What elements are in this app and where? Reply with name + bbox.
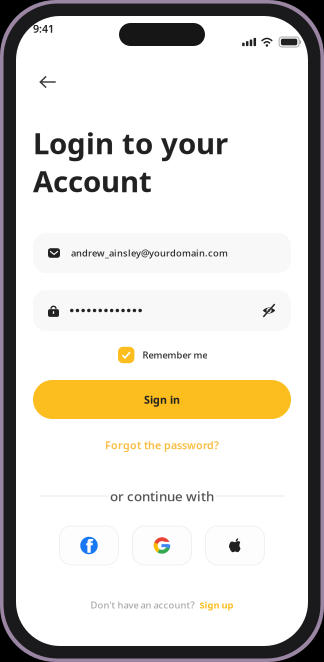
staticText: Remember me <box>142 349 207 361</box>
button[interactable] <box>132 526 191 565</box>
staticText: or continue with <box>110 487 214 505</box>
button[interactable] <box>205 526 264 565</box>
staticText: Forgot the password? <box>105 438 219 452</box>
button[interactable]: Sign up <box>199 599 233 611</box>
staticText: andrew_ainsley@yourdomain.com <box>71 247 228 259</box>
button[interactable]: Sign in <box>33 380 291 419</box>
button[interactable]: Remember me <box>118 345 218 365</box>
staticText: 9:41 <box>33 21 54 36</box>
button[interactable]: Forgot the password? <box>88 437 236 453</box>
staticText: Don't have an account? <box>90 599 194 611</box>
staticText: Account <box>33 161 152 200</box>
button[interactable]: Show password <box>262 304 276 316</box>
staticText: Login to your <box>33 123 228 162</box>
button[interactable]: Back <box>28 62 68 102</box>
staticText: f <box>86 535 93 558</box>
staticText: Sign up <box>199 599 233 611</box>
staticText: Sign in <box>144 392 180 407</box>
button[interactable]: f <box>59 526 118 565</box>
